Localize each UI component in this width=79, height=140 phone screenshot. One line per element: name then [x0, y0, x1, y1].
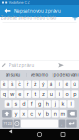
button[interactable]: Send	[56, 61, 65, 70]
button[interactable]: Home	[32, 129, 47, 140]
button[interactable]: e	[16, 90, 23, 98]
button[interactable]: s	[12, 100, 19, 108]
button[interactable]: ý	[40, 80, 47, 88]
staticText: í	[59, 82, 60, 87]
button[interactable]: Shift	[2, 110, 12, 117]
staticText: y	[14, 110, 17, 117]
button[interactable]: Add recipient	[70, 13, 79, 22]
staticText: z	[42, 91, 45, 97]
button[interactable]: Space	[21, 119, 58, 128]
button[interactable]: j	[52, 100, 59, 108]
staticText: Napsat novou zprávu	[14, 8, 61, 14]
staticText: j	[55, 101, 56, 107]
button[interactable]: a	[5, 100, 12, 108]
button[interactable]: b	[44, 110, 51, 117]
button[interactable]: poděkování	[53, 71, 79, 79]
button[interactable]: c	[28, 110, 35, 117]
staticText: n	[54, 110, 57, 117]
staticText: u	[50, 91, 53, 97]
button[interactable]: m	[60, 110, 67, 117]
button[interactable]: h	[44, 100, 51, 108]
button[interactable]: i	[56, 90, 63, 98]
staticText: Psát zprávu	[8, 62, 34, 68]
staticText: b	[46, 110, 49, 117]
staticText: w	[10, 91, 14, 97]
staticText: i	[59, 91, 60, 97]
button[interactable]: k	[60, 100, 67, 108]
staticText: k	[62, 101, 65, 107]
staticText: .	[61, 120, 63, 127]
button[interactable]: velkomo	[26, 71, 52, 79]
button[interactable]: anšuku	[0, 71, 26, 79]
button[interactable]: ?123	[2, 119, 13, 128]
staticText: ?123	[3, 121, 11, 126]
button[interactable]: v	[36, 110, 43, 117]
staticText: anšuku	[6, 72, 21, 77]
button[interactable]: ž	[32, 80, 39, 88]
button[interactable]: š	[8, 80, 15, 88]
staticText: c	[30, 110, 33, 117]
staticText: v	[38, 110, 41, 117]
button[interactable]: z	[40, 90, 47, 98]
button[interactable]: f	[28, 100, 35, 108]
staticText: t	[35, 91, 37, 97]
button[interactable]: Emoji	[14, 119, 20, 128]
button[interactable]: Recent apps	[55, 129, 70, 140]
staticText: e	[18, 91, 21, 97]
button[interactable]: č	[16, 80, 23, 88]
button[interactable]: p	[71, 90, 78, 98]
button[interactable]: Backspace	[67, 110, 77, 117]
button[interactable]: w	[8, 90, 15, 98]
button[interactable]: Back	[8, 129, 23, 140]
staticText: q	[3, 91, 6, 97]
button[interactable]: Back	[1, 5, 14, 17]
button[interactable]: u	[48, 90, 55, 98]
staticText: o	[65, 91, 68, 97]
staticText: é	[65, 82, 68, 87]
button[interactable]: í	[56, 80, 63, 88]
staticText: a	[7, 101, 10, 107]
button[interactable]: ú	[71, 80, 78, 88]
staticText: s	[14, 101, 17, 107]
button[interactable]: Send	[66, 119, 77, 128]
button[interactable]: g	[36, 100, 43, 108]
button[interactable]: l	[67, 100, 74, 108]
staticText: d	[22, 101, 25, 107]
staticText: á	[50, 82, 53, 87]
staticText: m	[61, 110, 66, 117]
button[interactable]: ě	[1, 80, 8, 88]
button[interactable]: n	[52, 110, 59, 117]
staticText: p	[73, 91, 76, 97]
staticText: ý	[42, 82, 45, 87]
staticText: Zadejte jméno nebo číslo	[0, 15, 56, 20]
staticText: l	[70, 101, 71, 107]
button[interactable]: ř	[24, 80, 31, 88]
staticText: č	[18, 82, 21, 87]
staticText: g	[38, 101, 41, 107]
staticText: f	[31, 101, 33, 107]
staticText: ú	[73, 82, 76, 87]
button[interactable]: x	[20, 110, 27, 117]
button[interactable]: d	[20, 100, 27, 108]
button[interactable]: Attach	[0, 61, 8, 70]
staticText: poděkování	[53, 72, 78, 77]
staticText: r	[27, 91, 29, 97]
button[interactable]: y	[12, 110, 19, 117]
button[interactable]: t	[32, 90, 39, 98]
staticText: š	[11, 82, 13, 87]
button[interactable]: r	[24, 90, 31, 98]
button[interactable]: o	[63, 90, 70, 98]
staticText: x	[22, 110, 25, 117]
staticText: Vodafone CZ	[8, 0, 29, 5]
staticText: h	[46, 101, 49, 107]
button[interactable]: .	[59, 119, 65, 128]
staticText: ž	[34, 82, 37, 87]
staticText: ě	[3, 82, 6, 87]
staticText: velkomo	[30, 72, 48, 77]
button[interactable]: q	[1, 90, 8, 98]
button[interactable]: é	[63, 80, 70, 88]
button[interactable]: á	[48, 80, 55, 88]
staticText: ř	[27, 82, 29, 87]
